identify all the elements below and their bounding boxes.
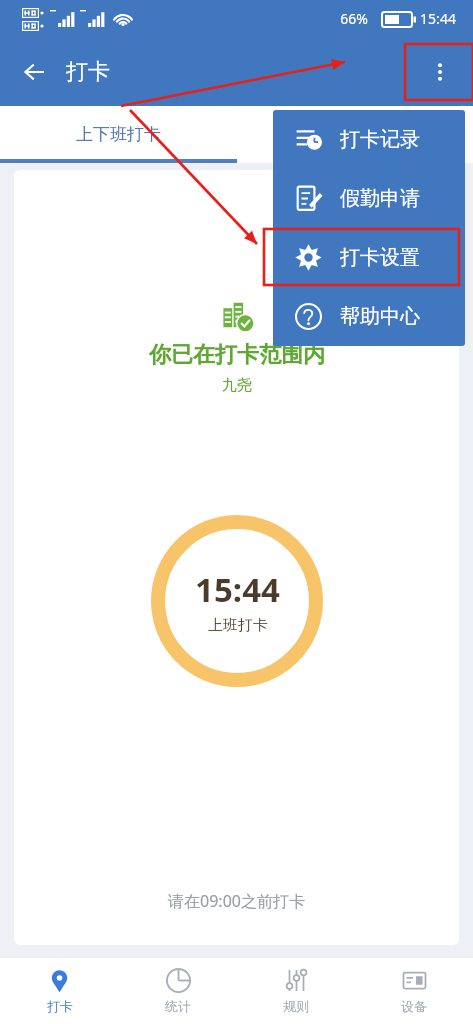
staticText: 帮助中心 <box>340 304 420 329</box>
button[interactable]: 假勤申请 <box>273 169 465 228</box>
button[interactable]: 规则 <box>237 958 355 1024</box>
button[interactable]: 15:44 <box>151 515 323 687</box>
button[interactable]: 打卡记录 <box>273 110 465 169</box>
button[interactable] <box>236 106 473 163</box>
staticText: 打卡 <box>66 58 110 86</box>
staticText: 请在09:00之前打卡 <box>168 890 305 912</box>
staticText: 假勤申请 <box>340 186 420 211</box>
button[interactable]: 打卡 <box>0 958 119 1024</box>
staticText: 15:44 <box>420 9 456 28</box>
staticText: 打卡 <box>47 998 73 1014</box>
button[interactable]: 统计 <box>119 958 237 1024</box>
button[interactable]: 上下班打卡 <box>0 106 236 163</box>
button[interactable]: 打卡设置 <box>273 228 465 287</box>
staticText: 15:44 <box>195 567 280 612</box>
staticText: 九尧 <box>222 376 252 395</box>
staticText: 打卡记录 <box>340 127 420 152</box>
staticText: 上下班打卡 <box>76 124 161 145</box>
button[interactable]: 设备 <box>355 958 473 1024</box>
button[interactable]: Back <box>12 50 56 94</box>
staticText: 设备 <box>401 998 427 1014</box>
staticText: 打卡设置 <box>340 245 420 270</box>
staticText: 规则 <box>283 998 309 1014</box>
staticText: 你已在打卡范围内 <box>149 341 325 369</box>
staticText: 上班打卡 <box>208 616 268 635</box>
staticText: 66% <box>340 9 368 28</box>
button[interactable]: 帮助中心 <box>273 287 465 346</box>
button[interactable]: More options <box>417 49 463 95</box>
staticText: 统计 <box>165 998 191 1014</box>
